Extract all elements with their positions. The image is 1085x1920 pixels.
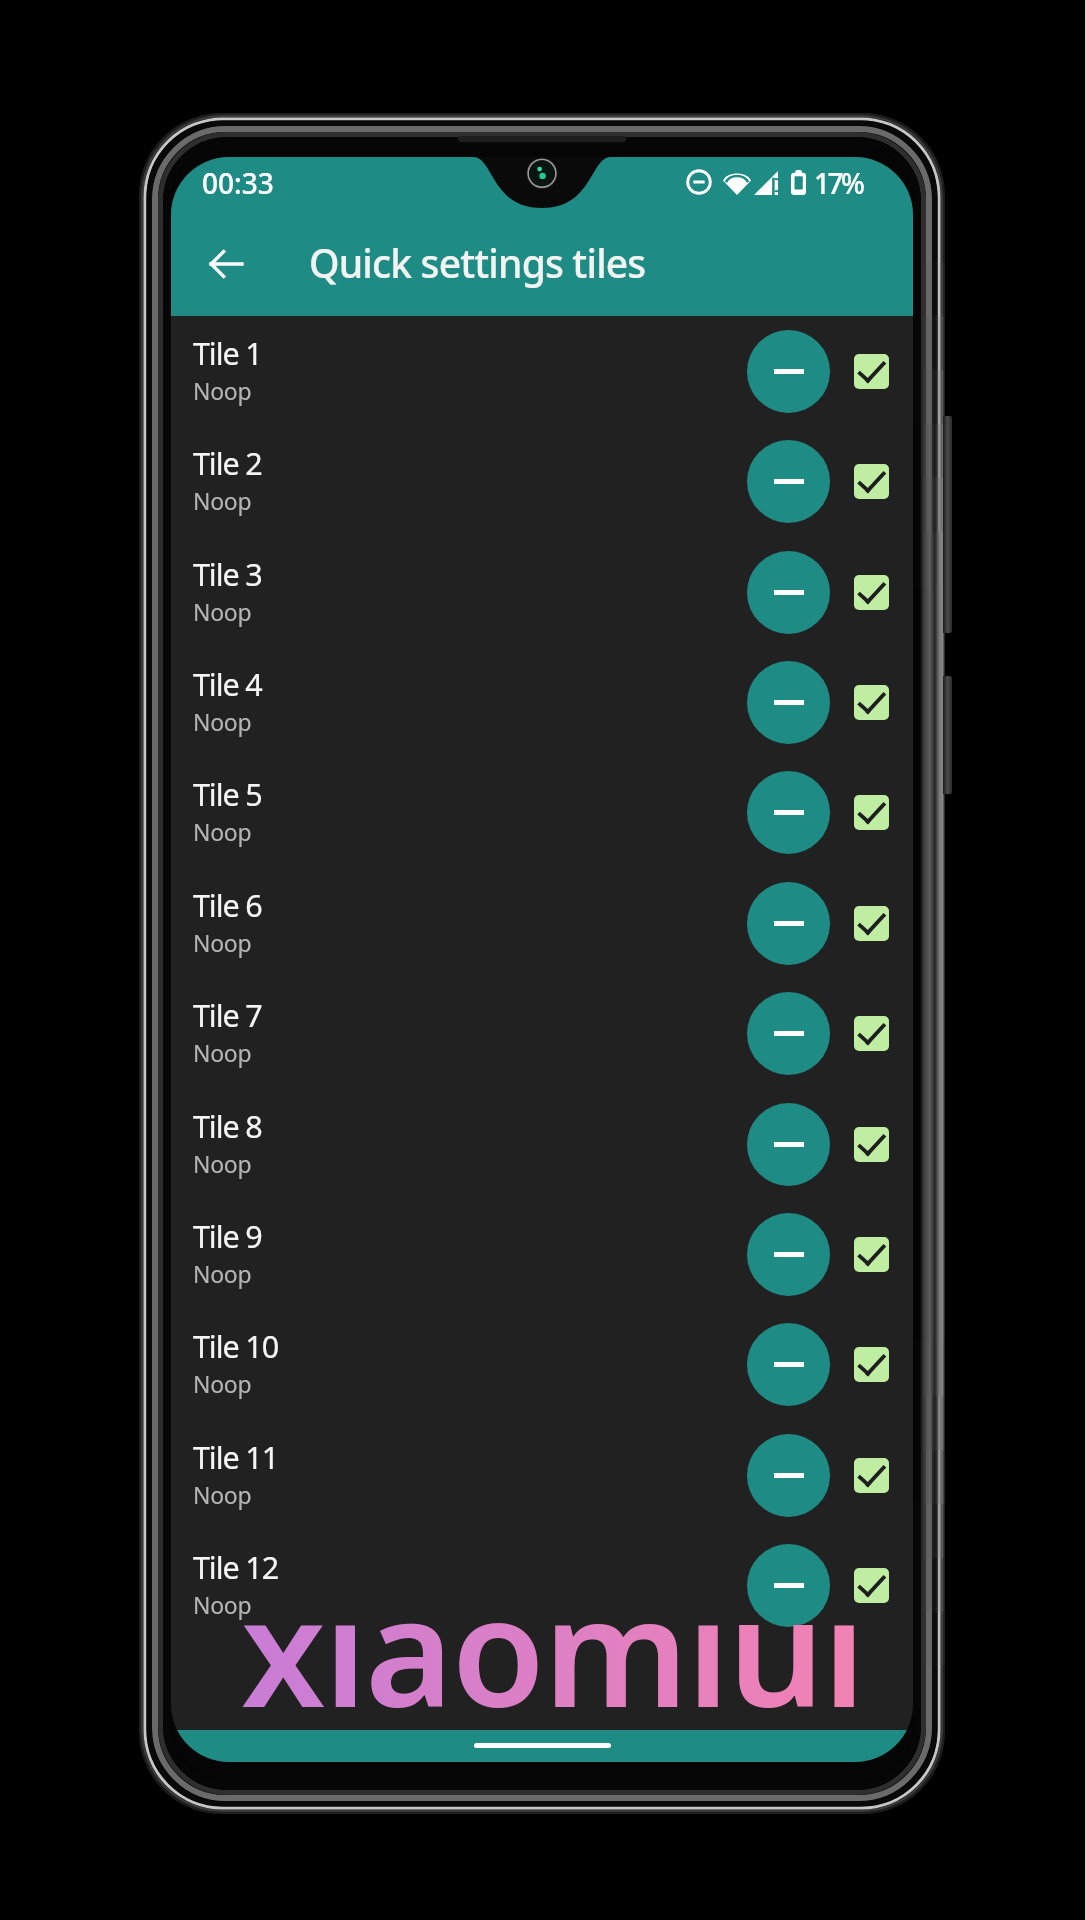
staticText: Noop	[193, 1258, 252, 1289]
staticText: 17%	[814, 164, 863, 202]
button[interactable]: Tile enabled	[854, 1127, 889, 1162]
button[interactable]: Tile enabled	[854, 906, 889, 941]
button[interactable]: Tile enabled	[854, 1458, 889, 1493]
button[interactable]: Navigate up	[195, 233, 257, 295]
button[interactable]: Tile 1	[171, 316, 913, 426]
button[interactable]: Tile 11	[171, 1420, 913, 1530]
button[interactable]: Tile enabled	[854, 1016, 889, 1051]
staticText: Noop	[193, 375, 252, 406]
staticText: Noop	[193, 927, 252, 958]
staticText: Noop	[193, 706, 252, 737]
button[interactable]: Tile enabled	[854, 464, 889, 499]
button[interactable]: Tile icon	[747, 771, 830, 854]
staticText: Noop	[193, 1037, 252, 1068]
button[interactable]: Tile icon	[747, 661, 830, 744]
button[interactable]: Tile 2	[171, 426, 913, 536]
button[interactable]: Tile 7	[171, 978, 913, 1088]
button[interactable]: Tile icon	[747, 440, 830, 523]
staticText: Tile 11	[193, 1436, 279, 1478]
button[interactable]: Tile enabled	[854, 1237, 889, 1272]
button[interactable]: Tile 6	[171, 868, 913, 978]
staticText: Quick settings tiles	[309, 236, 646, 289]
button[interactable]: Tile enabled	[854, 575, 889, 610]
button[interactable]: Tile enabled	[854, 1347, 889, 1382]
staticText: Tile 2	[193, 442, 262, 484]
staticText: Tile 4	[193, 663, 262, 705]
staticText: xıaomıuı	[241, 1546, 864, 1752]
staticText: Noop	[193, 485, 252, 516]
staticText: Noop	[193, 1589, 252, 1620]
button[interactable]: Tile icon	[747, 551, 830, 634]
button[interactable]: Tile 5	[171, 757, 913, 867]
staticText: Tile 7	[193, 994, 262, 1036]
staticText: Noop	[193, 596, 252, 627]
button[interactable]: Tile enabled	[854, 685, 889, 720]
staticText: Noop	[193, 1148, 252, 1179]
staticText: Tile 9	[193, 1215, 262, 1257]
button[interactable]: Tile icon	[747, 882, 830, 965]
button[interactable]: Tile enabled	[854, 354, 889, 389]
staticText: Tile 12	[193, 1546, 279, 1588]
button[interactable]: Tile 8	[171, 1089, 913, 1199]
button[interactable]: Tile 3	[171, 537, 913, 647]
button[interactable]: Tile icon	[747, 1213, 830, 1296]
button[interactable]: Tile icon	[747, 1323, 830, 1406]
button[interactable]: Tile 9	[171, 1199, 913, 1309]
button[interactable]: Tile 4	[171, 647, 913, 757]
staticText: Tile 1	[193, 332, 262, 374]
button[interactable]: Tile icon	[747, 1434, 830, 1517]
staticText: Tile 6	[193, 884, 262, 926]
staticText: Noop	[193, 1479, 252, 1510]
button[interactable]: Tile 12	[171, 1530, 913, 1640]
button[interactable]: Tile 10	[171, 1309, 913, 1419]
staticText: Noop	[193, 816, 252, 847]
staticText: Tile 8	[193, 1105, 262, 1147]
staticText: 00:33	[202, 164, 274, 202]
button[interactable]: Tile icon	[747, 1544, 830, 1627]
staticText: Tile 10	[193, 1325, 279, 1367]
staticText: Tile 5	[193, 773, 262, 815]
button[interactable]: Tile enabled	[854, 795, 889, 830]
staticText: Tile 3	[193, 553, 262, 595]
button[interactable]: Tile icon	[747, 330, 830, 413]
button[interactable]: Tile icon	[747, 992, 830, 1075]
staticText: Noop	[193, 1368, 252, 1399]
button[interactable]: Tile enabled	[854, 1568, 889, 1603]
button[interactable]: Tile icon	[747, 1103, 830, 1186]
